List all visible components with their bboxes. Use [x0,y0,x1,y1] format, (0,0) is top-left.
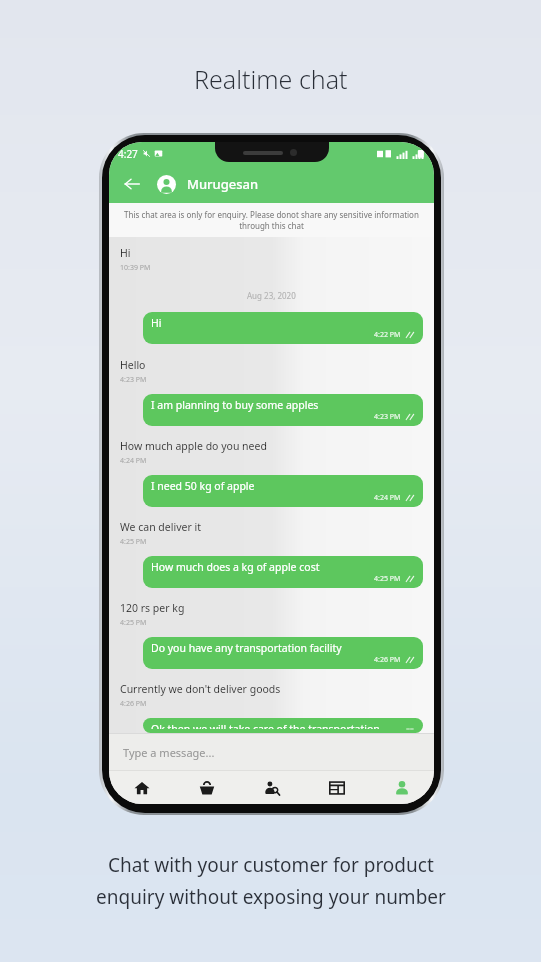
staticText: enquiry without exposing your number [96,884,446,910]
staticText: Hi [151,316,162,330]
staticText: I am planning to buy some apples [151,398,319,412]
button[interactable]: I need 50 kg of apple [143,475,423,507]
button[interactable]: Profile [155,173,177,195]
staticText: Do you have any transportation facility [151,641,342,655]
staticText: 120 rs per kg [120,601,185,615]
staticText: 10:39 PM [120,263,151,273]
staticText: Currently we don't deliver goods [120,682,281,696]
button[interactable]: Profile [369,771,434,804]
button[interactable]: Do you have any transportation facility [143,637,423,669]
button[interactable]: Home [109,771,174,804]
staticText: 4:26 PM [374,655,401,665]
staticText: Ok then we will take care of the transpo… [151,722,380,729]
staticText: Chat with your customer for product [108,852,434,878]
staticText: How much does a kg of apple cost [151,560,320,574]
staticText: 4:26 PM [120,699,147,709]
staticText: 4:23 PM [120,375,147,385]
staticText: 4:24 PM [374,493,401,503]
staticText: Realtime chat [194,62,348,96]
staticText: Hello [120,358,146,372]
staticText: 4:25 PM [120,618,147,628]
staticText: Hi [120,246,131,260]
button[interactable]: Type a message... [109,734,434,770]
staticText: We can deliver it [120,520,201,534]
staticText: 4:27 [118,147,138,161]
staticText: Aug 23, 2020 [247,290,296,301]
staticText: How much apple do you need [120,439,267,453]
staticText: I need 50 kg of apple [151,479,255,493]
staticText: 4:25 PM [120,537,147,547]
button[interactable]: Search customers [239,771,304,804]
button[interactable]: I am planning to buy some apples [143,394,423,426]
button[interactable]: Hi [143,312,423,344]
staticText: 4:23 PM [374,412,401,422]
button[interactable]: Back [120,172,144,196]
staticText: 4:25 PM [374,574,401,584]
staticText: Type a message... [123,745,215,760]
staticText: Murugesan [187,175,259,193]
staticText: 4:22 PM [374,330,401,340]
staticText: This chat area is only for enquiry. Plea… [120,209,423,231]
button[interactable]: Orders [174,771,239,804]
button[interactable]: Ok then we will take care of the transpo… [143,718,423,733]
button[interactable]: How much does a kg of apple cost [143,556,423,588]
staticText: 4:24 PM [120,456,147,466]
button[interactable]: Dashboard [304,771,369,804]
